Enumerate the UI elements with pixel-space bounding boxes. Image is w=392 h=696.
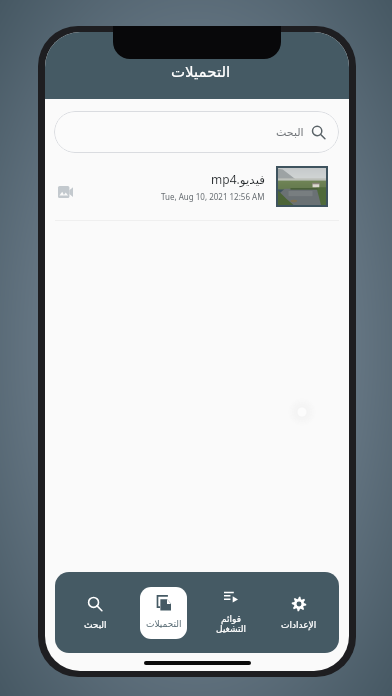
button[interactable]: Settings: [265, 572, 333, 653]
staticText: التحميلات: [146, 619, 182, 629]
staticText: التشغيل: [216, 624, 246, 634]
button[interactable]: Search: [61, 572, 129, 653]
other: Search: [87, 596, 103, 612]
staticText: البحث: [84, 620, 107, 630]
staticText: الإعدادات: [281, 620, 317, 630]
other: Playlists: [224, 591, 238, 603]
staticText: التحميلات: [171, 63, 231, 80]
other: Search: [311, 125, 326, 140]
button[interactable]: التحميلات: [140, 587, 187, 639]
other: Settings: [291, 596, 307, 612]
button[interactable]: Playlists: [197, 572, 265, 653]
button[interactable]: فيديو.mp4: [45, 157, 349, 220]
staticText: قوائم: [221, 614, 241, 624]
staticText: فيديو.mp4: [211, 171, 265, 187]
button[interactable]: البحث: [54, 111, 339, 153]
staticText: البحث: [276, 126, 304, 139]
staticText: Tue, Aug 10, 2021 12:56 AM: [161, 191, 265, 202]
